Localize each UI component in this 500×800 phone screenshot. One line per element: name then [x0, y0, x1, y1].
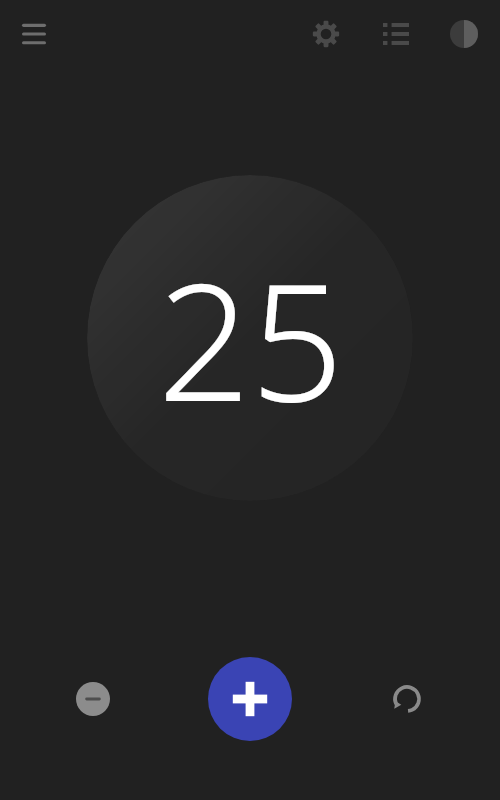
button[interactable]: Reset: [383, 675, 431, 723]
button[interactable]: Toggle theme: [440, 10, 488, 58]
button[interactable]: Decrease: [69, 675, 117, 723]
button[interactable]: Menu: [10, 10, 58, 58]
button[interactable]: 25: [87, 175, 413, 501]
button[interactable]: Increase: [208, 657, 292, 741]
button[interactable]: History list: [372, 10, 420, 58]
staticText: 25: [157, 227, 344, 449]
button[interactable]: Settings: [302, 10, 350, 58]
